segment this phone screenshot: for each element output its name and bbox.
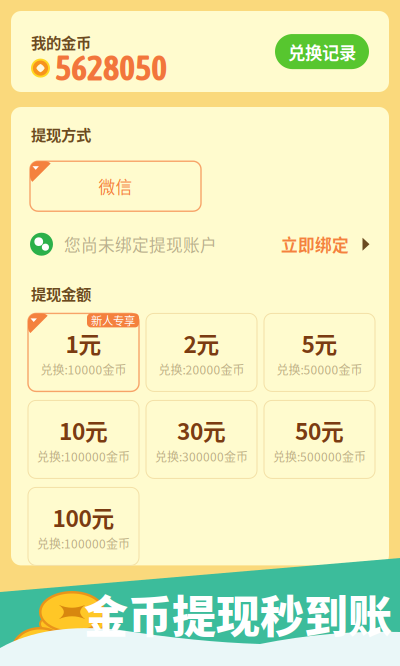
button[interactable]: 5元 — [264, 313, 375, 391]
staticText: 您尚未绑定提现账户 — [64, 232, 217, 256]
staticText: 10元 — [59, 414, 108, 447]
staticText: 兑换记录 — [288, 39, 356, 64]
staticText: 兑换:20000金币 — [158, 361, 244, 378]
staticText: 立即绑定 — [281, 232, 349, 256]
staticText: 微信 — [98, 174, 132, 198]
staticText: 提现方式 — [31, 123, 91, 145]
staticText: 2元 — [183, 327, 219, 360]
staticText: 兑换:100000金币 — [37, 448, 130, 465]
staticText: 5628050 — [55, 48, 167, 88]
button[interactable]: 2元 — [146, 313, 257, 391]
staticText: 1元 — [65, 327, 101, 360]
button[interactable]: 您尚未绑定提现账户 — [11, 229, 389, 259]
staticText: 我的金币 — [31, 31, 91, 53]
staticText: 提现金额 — [31, 282, 91, 304]
staticText: 兑换:50000金币 — [276, 361, 362, 378]
staticText: 30元 — [177, 414, 226, 447]
staticText: 兑换:500000金币 — [273, 448, 366, 465]
button[interactable]: 微信 — [30, 161, 201, 211]
staticText: 兑换:300000金币 — [155, 448, 248, 465]
staticText: 新人专享 — [91, 312, 135, 329]
button[interactable]: 50元 — [264, 400, 375, 478]
staticText: 兑换:10000金币 — [40, 361, 126, 378]
button[interactable]: 兑换记录 — [275, 34, 369, 69]
button[interactable]: 100元 — [28, 487, 139, 565]
staticText: 100元 — [52, 501, 114, 534]
button[interactable]: 30元 — [146, 400, 257, 478]
staticText: 兑换:100000金币 — [37, 535, 130, 552]
staticText: 50元 — [295, 414, 344, 447]
staticText: 金币提现秒到账 — [84, 582, 392, 646]
staticText: 5元 — [301, 327, 337, 360]
button[interactable]: 10元 — [28, 400, 139, 478]
button[interactable]: 1元 — [28, 313, 139, 391]
